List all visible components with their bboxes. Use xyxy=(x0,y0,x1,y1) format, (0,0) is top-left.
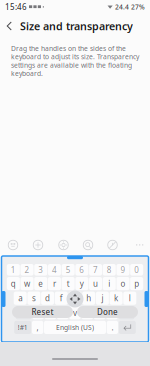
button[interactable]: t xyxy=(62,277,75,290)
button[interactable]: 5 xyxy=(62,264,75,276)
staticText: !#1 xyxy=(18,323,28,332)
button[interactable]: i xyxy=(103,277,116,290)
button[interactable]: p xyxy=(130,277,143,290)
staticText: i xyxy=(108,278,110,289)
staticText: Reset xyxy=(31,307,53,317)
button[interactable]: English (US) xyxy=(44,321,106,334)
button[interactable]: r xyxy=(48,277,61,290)
button[interactable]: h xyxy=(82,292,95,305)
button[interactable]: Shift xyxy=(16,306,32,319)
button[interactable]: Return xyxy=(119,321,136,334)
staticText: w xyxy=(24,278,30,289)
staticText: s xyxy=(32,293,36,303)
staticText: 2 xyxy=(24,264,29,275)
button[interactable]: , xyxy=(32,321,43,334)
staticText: n xyxy=(97,307,102,318)
staticText: k xyxy=(114,293,118,303)
button[interactable]: k xyxy=(110,292,123,305)
staticText: m xyxy=(108,307,115,318)
button[interactable]: Keyboard settings xyxy=(51,236,76,254)
button[interactable]: 0 xyxy=(130,264,143,276)
staticText: e xyxy=(38,278,43,289)
staticText: y xyxy=(80,278,84,289)
button[interactable]: g xyxy=(68,292,81,305)
button[interactable]: Reset xyxy=(12,306,73,318)
button[interactable]: y xyxy=(75,277,88,290)
staticText: 6 xyxy=(79,264,84,275)
staticText: 7 xyxy=(93,264,98,275)
button[interactable]: z xyxy=(32,306,44,319)
staticText: 15:46 xyxy=(5,2,27,12)
staticText: 0 xyxy=(134,264,139,275)
staticText: j xyxy=(101,293,103,303)
button[interactable]: . xyxy=(107,321,118,334)
staticText: English (US) xyxy=(56,323,94,332)
staticText: 3 xyxy=(38,264,43,275)
staticText: t xyxy=(67,278,70,289)
staticText: f xyxy=(60,293,63,303)
button[interactable]: q xyxy=(7,277,20,290)
button[interactable]: l xyxy=(123,292,136,305)
staticText: r xyxy=(53,278,56,289)
staticText: 8 xyxy=(107,264,112,275)
button[interactable]: e xyxy=(34,277,47,290)
staticText: Size and transparency xyxy=(20,19,133,33)
button[interactable]: Done xyxy=(77,306,138,318)
button[interactable]: d xyxy=(41,292,54,305)
button[interactable]: Clipboard xyxy=(25,236,51,254)
staticText: 5 xyxy=(66,264,71,275)
staticText: , xyxy=(37,322,39,333)
button[interactable]: !#1 xyxy=(14,321,31,334)
button[interactable]: 8 xyxy=(103,264,116,276)
staticText: 1 xyxy=(11,264,16,275)
button[interactable]: j xyxy=(96,292,109,305)
button[interactable]: 3 xyxy=(34,264,47,276)
button[interactable]: Stickers xyxy=(1,236,25,254)
button[interactable]: 7 xyxy=(89,264,102,276)
staticText: 4 xyxy=(52,264,57,275)
staticText: u xyxy=(93,278,98,289)
staticText: o xyxy=(120,278,125,289)
staticText: g xyxy=(72,293,77,303)
staticText: l xyxy=(129,293,131,303)
staticText: x xyxy=(48,307,52,318)
button[interactable]: 2 xyxy=(20,264,33,276)
staticText: d xyxy=(45,293,50,303)
button[interactable]: b xyxy=(81,306,93,319)
button[interactable]: n xyxy=(94,306,105,319)
button[interactable]: u xyxy=(89,277,102,290)
staticText: a xyxy=(18,293,22,303)
staticText: Done xyxy=(97,307,118,317)
staticText: q xyxy=(11,278,16,289)
staticText: h xyxy=(86,293,91,303)
button[interactable]: Search xyxy=(76,236,100,254)
button[interactable]: o xyxy=(116,277,129,290)
staticText: 9 xyxy=(120,264,125,275)
button[interactable]: a xyxy=(14,292,27,305)
button[interactable]: f xyxy=(55,292,68,305)
staticText: v xyxy=(73,307,77,318)
button[interactable]: s xyxy=(27,292,40,305)
button[interactable]: c xyxy=(57,306,68,319)
button[interactable]: 6 xyxy=(75,264,88,276)
staticText: z xyxy=(36,307,40,318)
staticText: . xyxy=(111,322,113,333)
staticText: p xyxy=(134,278,139,289)
button[interactable]: x xyxy=(45,306,56,319)
button[interactable]: 1 xyxy=(7,264,20,276)
button[interactable]: Voice input off xyxy=(100,236,125,254)
button[interactable]: Back xyxy=(2,16,17,36)
staticText: 24.4 27% xyxy=(115,3,145,11)
button[interactable]: w xyxy=(20,277,33,290)
button[interactable]: 4 xyxy=(48,264,61,276)
staticText: Drag the handles on the sides of the key… xyxy=(11,44,139,78)
button[interactable]: v xyxy=(69,306,81,319)
button[interactable]: m xyxy=(106,306,118,319)
button[interactable]: 9 xyxy=(116,264,129,276)
